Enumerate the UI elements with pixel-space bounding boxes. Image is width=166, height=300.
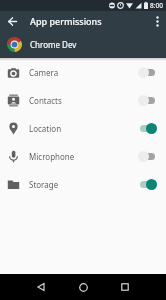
staticText: Camera (29, 67, 59, 78)
staticText: Storage (29, 179, 59, 190)
staticText: Microphone (29, 151, 75, 162)
button[interactable]: Camera (0, 58, 166, 86)
button[interactable]: Microphone (0, 142, 166, 170)
staticText: Location (29, 123, 62, 134)
button[interactable]: Chrome Dev (7, 31, 166, 58)
button[interactable] (0, 11, 24, 31)
button[interactable] (138, 179, 157, 190)
button[interactable] (148, 11, 166, 31)
staticText: Contacts (29, 95, 62, 106)
button[interactable]: Contacts (0, 86, 166, 114)
button[interactable] (138, 123, 157, 134)
button[interactable]: Location (0, 114, 166, 142)
button[interactable]: Storage (0, 170, 166, 198)
staticText: App permissions (30, 15, 102, 27)
button[interactable] (104, 274, 146, 300)
button[interactable] (62, 274, 104, 300)
button[interactable] (138, 95, 157, 106)
button[interactable] (138, 151, 157, 162)
staticText: Chrome Dev (30, 39, 77, 50)
staticText: 8:00 (150, 1, 163, 10)
button[interactable] (20, 274, 62, 300)
button[interactable] (138, 67, 157, 78)
